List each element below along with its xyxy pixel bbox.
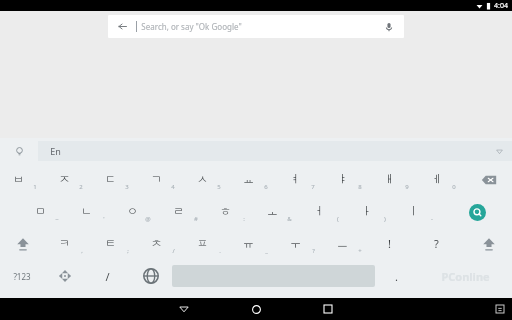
button[interactable]: ? [418,228,465,260]
button[interactable]: ㅇ [114,196,160,228]
staticText: 5 [217,183,221,191]
staticText: # [194,215,198,223]
button[interactable]: ㅛ [230,164,277,196]
button[interactable]: Shift [0,228,46,260]
button[interactable]: ㅍ [184,228,230,260]
staticText: / [172,247,175,255]
staticText: - [431,215,433,223]
staticText: ㅡ [337,236,348,250]
staticText: & [287,215,292,223]
button[interactable]: ㅔ [418,164,465,196]
button[interactable]: Suggestions [0,138,38,164]
button[interactable]: ㅏ [348,196,395,228]
button[interactable]: Shift [465,228,512,260]
staticText: Search, or say "Ok Google" [141,21,242,32]
staticText: ㄱ [151,172,162,186]
staticText: 6 [264,183,268,191]
button[interactable]: ㅐ [371,164,418,196]
button[interactable]: ㅕ [277,164,324,196]
staticText: ! [388,236,391,251]
button[interactable]: ㅣ [395,196,442,228]
button[interactable]: / [86,260,129,292]
staticText: ㅅ [197,172,208,186]
staticText: ㅌ [105,236,116,250]
staticText: 1 [33,183,37,191]
button[interactable]: ㄴ [68,196,114,228]
staticText: + [358,247,362,255]
staticText: ㅑ [337,172,348,186]
staticText: ㅇ [127,204,138,218]
staticText: 0 [452,183,456,191]
staticText: ? [312,247,315,255]
staticText: ㅛ [243,172,254,186]
staticText: 7 [311,183,315,191]
button[interactable]: . [375,260,418,292]
staticText: 8 [358,183,362,191]
staticText: : [243,215,245,223]
staticText: ㅂ [13,172,24,186]
staticText: ㅐ [384,172,395,186]
button[interactable]: ㅡ [324,228,371,260]
staticText: ㅣ [408,204,419,218]
button[interactable]: ㅂ [0,164,46,196]
button[interactable]: Back [108,15,404,38]
staticText: ㅔ [431,172,442,186]
staticText: ㅋ [59,236,70,250]
button[interactable]: ㅎ [207,196,254,228]
staticText: ㅈ [59,172,70,186]
staticText: 3 [125,183,129,191]
staticText: ; [127,247,129,255]
button[interactable]: ㅠ [230,228,277,260]
staticText: ? [434,236,439,251]
button[interactable]: Back [108,15,136,38]
button[interactable]: Recent apps [317,298,339,320]
staticText: ㅗ [267,204,278,218]
button[interactable]: ㄱ [138,164,184,196]
button[interactable]: ㅁ [22,196,68,228]
staticText: ㅠ [243,236,254,250]
staticText: ' [103,215,105,223]
staticText: _ [265,247,268,255]
staticText: . [219,247,221,255]
button[interactable]: Move cursor [43,260,86,292]
button[interactable]: Change language [129,260,172,292]
staticText: . [395,269,398,284]
button[interactable]: ㅋ [46,228,92,260]
button[interactable]: ㄷ [92,164,138,196]
button[interactable]: ㅌ [92,228,138,260]
staticText: ) [384,215,386,223]
button[interactable]: Voice search [374,15,404,38]
staticText: En [50,145,61,157]
button[interactable]: Switch keyboard [493,302,507,316]
staticText: PConline [441,269,490,284]
button[interactable]: ㅗ [254,196,301,228]
button[interactable]: ㅈ [46,164,92,196]
button[interactable]: ㅑ [324,164,371,196]
staticText: ㅍ [197,236,208,250]
button[interactable]: ㅊ [138,228,184,260]
button[interactable]: Home [245,298,267,320]
staticText: ㅜ [290,236,301,250]
button[interactable]: ! [371,228,418,260]
staticText: @ [145,215,151,223]
staticText: ㅕ [290,172,301,186]
staticText: ㅓ [314,204,325,218]
staticText: ?123 [13,271,31,282]
button[interactable]: ㅜ [277,228,324,260]
button[interactable]: ㅓ [301,196,348,228]
button[interactable]: Backspace [465,164,512,196]
staticText: ( [337,215,339,223]
staticText: ~ [55,215,59,223]
staticText: 4:04 [494,1,508,11]
button[interactable]: Back [173,298,195,320]
button[interactable]: ㅅ [184,164,230,196]
staticText: ㄹ [173,204,184,218]
button[interactable]: ㄹ [160,196,207,228]
staticText: ㅎ [220,204,231,218]
staticText: ㅁ [35,204,46,218]
button[interactable]: Search [442,196,512,228]
staticText: / [105,269,110,284]
button[interactable]: En [38,141,512,161]
button[interactable]: ?123 [0,260,43,292]
